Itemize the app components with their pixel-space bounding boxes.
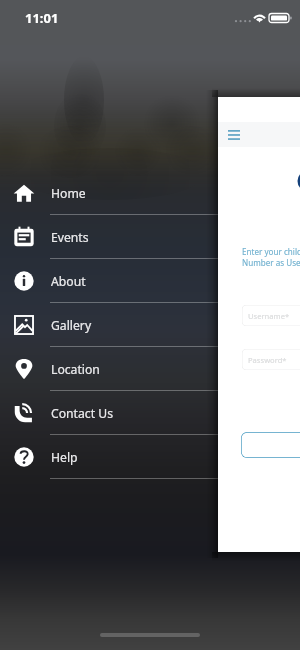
- staticText: Location: [51, 361, 100, 378]
- button[interactable]: Home: [0, 171, 300, 215]
- staticText: Events: [51, 229, 89, 246]
- button[interactable]: [241, 432, 300, 458]
- button[interactable]: Events: [0, 215, 300, 259]
- staticText: Gallery: [51, 317, 92, 334]
- staticText: 11:01: [25, 9, 59, 27]
- button[interactable]: Username*: [242, 305, 300, 326]
- staticText: Home: [51, 185, 86, 202]
- button[interactable]: Password*: [242, 349, 300, 370]
- button[interactable]: Help: [0, 435, 300, 479]
- staticText: Help: [51, 449, 78, 466]
- staticText: Username*: [248, 311, 290, 321]
- staticText: Enter your child Number as User: [242, 246, 300, 269]
- button[interactable]: Open navigation menu: [228, 130, 240, 140]
- button[interactable]: Contact Us: [0, 391, 300, 435]
- staticText: About: [51, 273, 86, 290]
- button[interactable]: Gallery: [0, 303, 300, 347]
- button[interactable]: Location: [0, 347, 300, 391]
- button[interactable]: About: [0, 259, 300, 303]
- staticText: Password*: [248, 355, 287, 365]
- staticText: Contact Us: [51, 405, 114, 422]
